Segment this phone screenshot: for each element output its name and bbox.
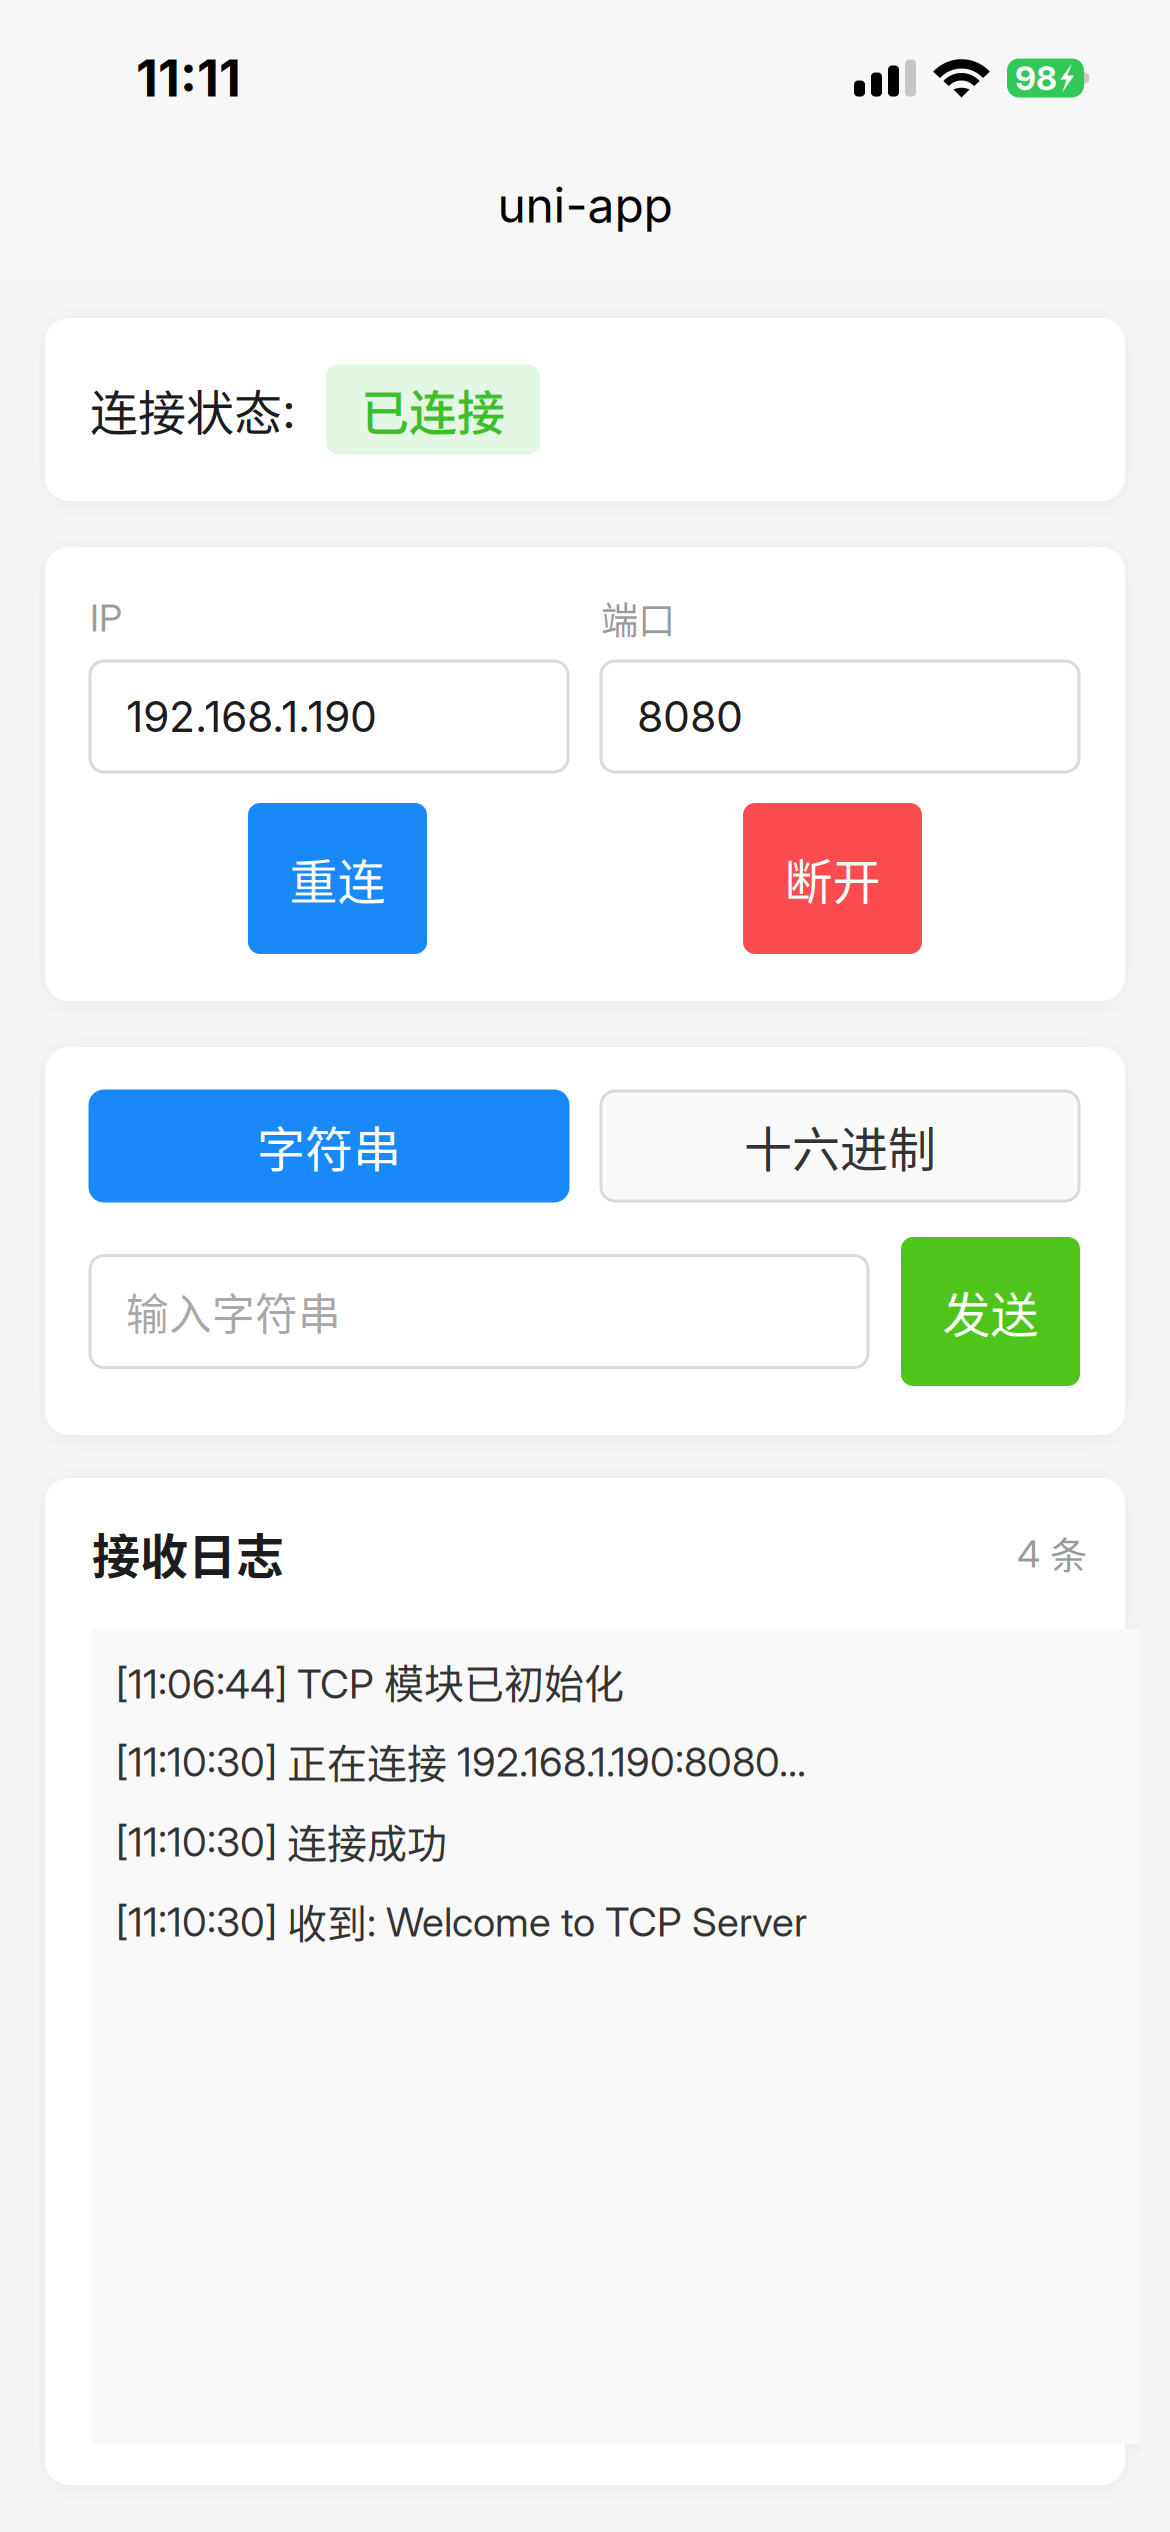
staticText: [11:10:30] 连接成功 [116, 1812, 447, 1870]
button[interactable]: 十六进制 [601, 1091, 1079, 1201]
button[interactable]: 发送 [901, 1237, 1080, 1386]
button[interactable]: 字符串 [90, 1091, 568, 1201]
staticText: IP [90, 595, 122, 641]
staticText: 重连 [289, 844, 385, 913]
button[interactable]: 重连 [248, 803, 427, 954]
button[interactable]: 端口 [601, 661, 1079, 772]
staticText: [11:10:30] 收到: Welcome to TCP Server [116, 1892, 807, 1950]
staticText: 十六进制 [744, 1111, 936, 1181]
staticText: 字符串 [257, 1111, 401, 1181]
staticText: 发送 [942, 1277, 1038, 1346]
staticText: 接收日志 [92, 1518, 284, 1588]
staticText: 断开 [784, 844, 880, 913]
staticText: 4 条 [1017, 1526, 1087, 1580]
staticText: 连接状态: [90, 375, 296, 444]
staticText: 已连接 [361, 375, 505, 444]
staticText: uni-app [497, 176, 672, 234]
button[interactable]: 输入字符串 [90, 1255, 868, 1367]
staticText: 98 [1015, 58, 1057, 98]
button[interactable]: 断开 [743, 803, 922, 954]
staticText: [11:06:44] TCP 模块已初始化 [116, 1652, 624, 1710]
staticText: 输入字符串 [126, 1281, 341, 1342]
staticText: 8080 [637, 691, 743, 742]
staticText: 端口 [601, 591, 675, 645]
staticText: 11:11 [136, 47, 241, 109]
staticText: 192.168.1.190 [126, 691, 377, 742]
staticText: [11:10:30] 正在连接 192.168.1.190:8080... [116, 1732, 806, 1790]
button[interactable]: IP 地址 [90, 661, 568, 772]
